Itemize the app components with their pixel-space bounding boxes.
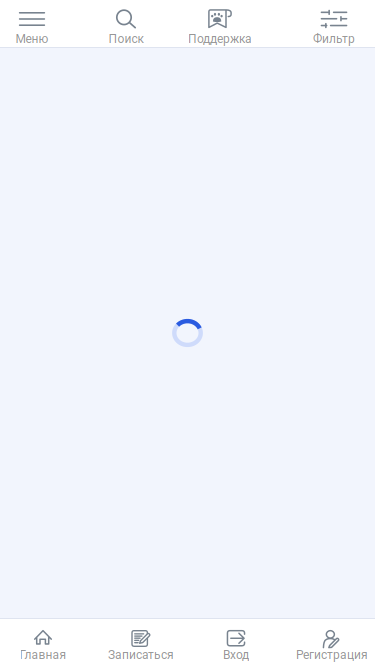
button[interactable]: Вход [214, 630, 258, 662]
button[interactable]: Записаться [105, 630, 177, 662]
button[interactable]: Поддержка [185, 9, 255, 46]
staticText: Записаться [108, 648, 174, 662]
button[interactable]: Регистрация [294, 630, 370, 662]
staticText: Вход [223, 648, 249, 662]
staticText: Поддержка [188, 32, 252, 46]
button[interactable]: Фильтр [307, 9, 361, 46]
staticText: Регистрация [296, 648, 368, 662]
staticText: Главная [19, 648, 66, 662]
button[interactable]: Поиск [95, 9, 157, 46]
button[interactable]: Меню [1, 9, 63, 46]
button[interactable]: Главная [9, 630, 77, 662]
staticText: Фильтр [313, 32, 355, 46]
staticText: Меню [15, 32, 48, 46]
staticText: Поиск [108, 32, 143, 46]
